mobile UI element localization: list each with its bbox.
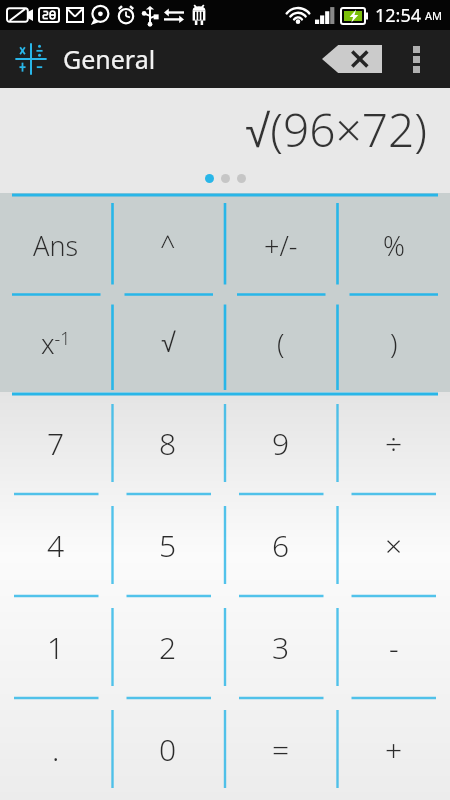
button[interactable]: √ [112, 294, 224, 392]
staticText: 7 [47, 423, 65, 464]
staticText: 5 [159, 525, 177, 566]
button[interactable]: More options [392, 30, 440, 88]
button[interactable]: 4 [0, 494, 112, 596]
button[interactable]: = [224, 698, 337, 800]
staticText: x-1 [41, 325, 71, 362]
button[interactable]: x-1 [0, 294, 112, 392]
staticText: 0 [159, 729, 177, 770]
button[interactable]: % [337, 197, 450, 294]
staticText: +/- [264, 227, 298, 264]
button[interactable]: 7 [0, 392, 112, 494]
button[interactable]: 6 [224, 494, 337, 596]
staticText: ÷ [385, 423, 403, 464]
staticText: 12:54 [375, 3, 422, 28]
staticText: 2 [159, 627, 177, 668]
staticText: 9 [272, 423, 290, 464]
staticText: Ans [33, 227, 79, 264]
staticText: 6 [272, 525, 290, 566]
button[interactable]: 3 [224, 596, 337, 698]
staticText: + [385, 729, 403, 770]
button[interactable]: 1 [0, 596, 112, 698]
button[interactable]: 2 [112, 596, 224, 698]
staticText: × [385, 525, 403, 566]
staticText: √ [161, 328, 176, 358]
button[interactable]: Ans [0, 197, 112, 294]
staticText: ) [390, 325, 398, 362]
staticText: 3 [272, 627, 290, 668]
staticText: = [272, 729, 290, 770]
button[interactable]: ) [337, 294, 450, 392]
staticText: 8 [159, 423, 177, 464]
staticText: AM [425, 8, 443, 23]
button[interactable]: +/- [224, 197, 337, 294]
button[interactable]: 9 [224, 392, 337, 494]
button[interactable]: . [0, 698, 112, 800]
button[interactable]: + [337, 698, 450, 800]
staticText: ( [277, 325, 285, 362]
staticText: - [389, 627, 399, 668]
button[interactable]: Backspace [316, 37, 388, 81]
staticText: 4 [47, 525, 65, 566]
button[interactable]: 8 [112, 392, 224, 494]
button[interactable]: × [337, 494, 450, 596]
button[interactable]: ( [224, 294, 337, 392]
staticText: . [52, 729, 60, 770]
button[interactable]: - [337, 596, 450, 698]
button[interactable]: ÷ [337, 392, 450, 494]
staticText: √(96×72) [245, 98, 428, 161]
staticText: ^ [160, 227, 176, 264]
staticText: % [383, 227, 405, 264]
staticText: 1 [47, 627, 65, 668]
staticText: General [63, 42, 156, 76]
button[interactable]: 5 [112, 494, 224, 596]
button[interactable]: ^ [112, 197, 224, 294]
button[interactable]: 0 [112, 698, 224, 800]
